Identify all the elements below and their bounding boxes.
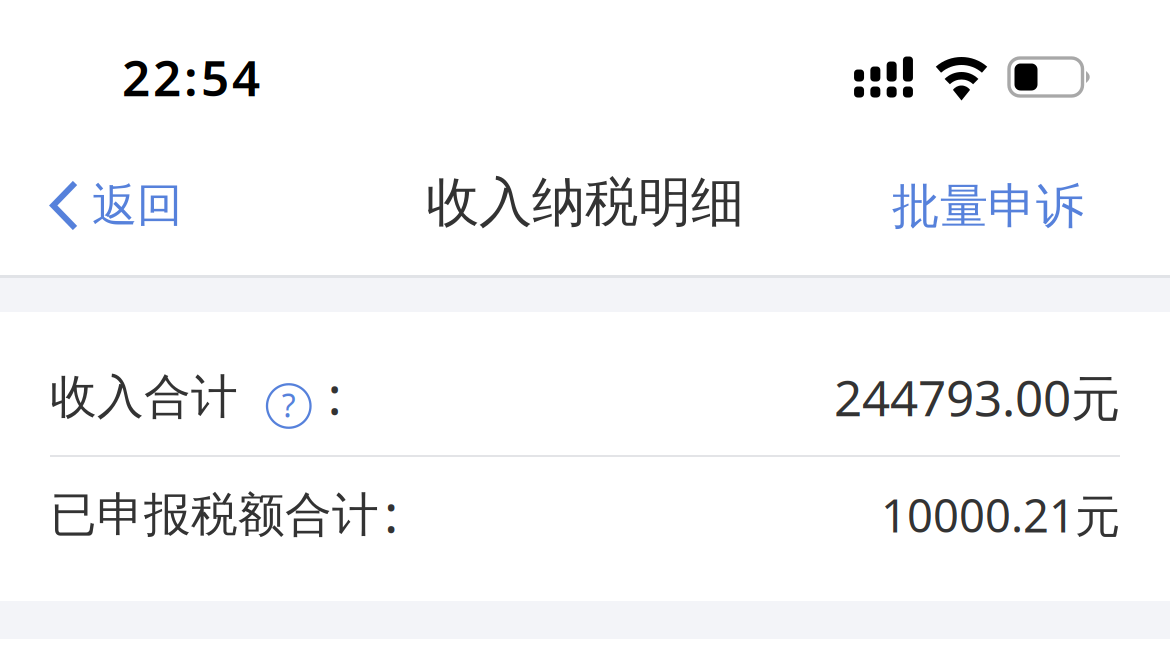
staticText: 已申报税额合计 [50,486,379,544]
staticText: 收入合计 [50,368,238,426]
staticText: ? [282,384,296,426]
staticText: : [327,359,341,429]
staticText: 批量申诉 [892,177,1084,236]
button[interactable]: 收入合计说明 [267,384,310,428]
staticText: 244793.00元 [834,364,1120,430]
button[interactable]: 返回 [0,147,202,257]
staticText: 收入纳税明细 [426,170,744,235]
button[interactable]: 批量申诉 [862,147,1170,257]
staticText: 10000.21元 [881,485,1120,545]
staticText: : [384,477,398,547]
staticText: 22:54 [122,44,260,110]
staticText: 返回 [92,178,182,233]
